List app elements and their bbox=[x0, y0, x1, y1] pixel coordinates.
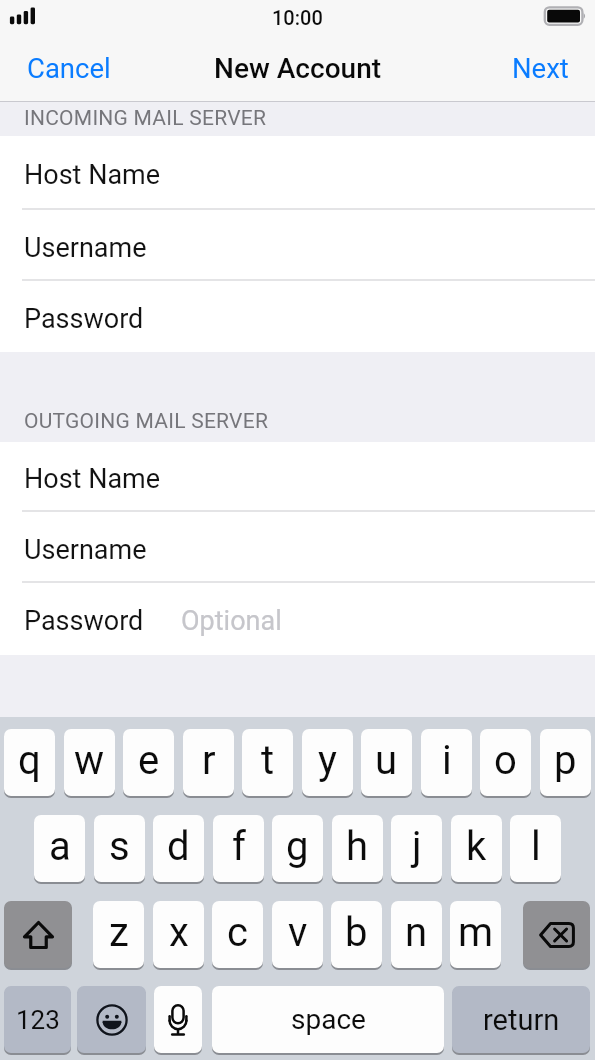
staticText: x bbox=[169, 909, 189, 956]
button[interactable]: Dictation bbox=[154, 986, 202, 1055]
staticText: v bbox=[288, 909, 308, 956]
button[interactable]: v bbox=[272, 901, 323, 970]
staticText: u bbox=[375, 737, 398, 784]
staticText: k bbox=[466, 823, 487, 870]
button[interactable]: d bbox=[153, 815, 204, 884]
staticText: o bbox=[494, 737, 517, 784]
button[interactable]: n bbox=[391, 901, 442, 970]
button[interactable]: space bbox=[212, 986, 444, 1055]
staticText: e bbox=[138, 737, 160, 784]
staticText: 10:00 bbox=[272, 6, 323, 29]
button[interactable]: c bbox=[212, 901, 263, 970]
staticText: Username bbox=[24, 232, 147, 264]
staticText: Host Name bbox=[24, 463, 161, 495]
button[interactable]: s bbox=[94, 815, 145, 884]
button[interactable]: i bbox=[421, 729, 472, 798]
button[interactable]: Backspace bbox=[523, 901, 590, 970]
staticText: space bbox=[291, 1003, 366, 1036]
staticText: OUTGOING MAIL SERVER bbox=[24, 409, 269, 434]
staticText: l bbox=[531, 823, 541, 870]
staticText: return bbox=[483, 1003, 560, 1037]
staticText: p bbox=[554, 737, 577, 784]
staticText: Cancel bbox=[27, 52, 111, 84]
staticText: Password bbox=[24, 605, 144, 637]
button[interactable]: Next bbox=[492, 43, 595, 99]
staticText: z bbox=[109, 909, 129, 956]
staticText: w bbox=[74, 737, 105, 784]
button[interactable]: w bbox=[64, 729, 115, 798]
button[interactable]: Shift bbox=[4, 901, 72, 970]
button[interactable]: o bbox=[480, 729, 531, 798]
staticText: a bbox=[49, 823, 71, 870]
button[interactable]: Password bbox=[0, 281, 595, 352]
button[interactable]: l bbox=[510, 815, 561, 884]
staticText: h bbox=[346, 823, 369, 870]
button[interactable]: h bbox=[332, 815, 383, 884]
button[interactable]: b bbox=[331, 901, 382, 970]
staticText: s bbox=[109, 823, 130, 870]
button[interactable]: Host Name bbox=[0, 442, 595, 512]
button[interactable]: z bbox=[93, 901, 144, 970]
button[interactable]: Emoji keyboard bbox=[77, 986, 146, 1055]
button[interactable]: q bbox=[4, 729, 55, 798]
staticText: Password bbox=[24, 303, 144, 335]
staticText: t bbox=[261, 737, 275, 784]
staticText: New Account bbox=[214, 52, 382, 85]
button[interactable]: Host Name bbox=[0, 136, 595, 210]
button[interactable]: Cancel bbox=[0, 43, 131, 99]
button[interactable]: f bbox=[213, 815, 264, 884]
staticText: g bbox=[286, 823, 309, 870]
button[interactable]: 123 bbox=[4, 986, 71, 1055]
staticText: y bbox=[318, 737, 337, 784]
staticText: i bbox=[442, 737, 452, 784]
button[interactable]: x bbox=[153, 901, 204, 970]
staticText: Username bbox=[24, 534, 147, 566]
button[interactable]: p bbox=[540, 729, 591, 798]
button[interactable]: Username bbox=[0, 210, 595, 281]
button[interactable]: g bbox=[272, 815, 323, 884]
staticText: Next bbox=[512, 52, 569, 84]
staticText: r bbox=[202, 737, 216, 784]
button[interactable]: k bbox=[451, 815, 502, 884]
button[interactable]: Username bbox=[0, 512, 595, 583]
button[interactable]: m bbox=[450, 901, 501, 970]
staticText: Optional bbox=[181, 605, 282, 637]
staticText: d bbox=[167, 823, 190, 870]
button[interactable]: return bbox=[452, 986, 590, 1055]
button[interactable]: r bbox=[183, 729, 234, 798]
button[interactable]: e bbox=[123, 729, 174, 798]
staticText: j bbox=[412, 823, 422, 870]
staticText: c bbox=[227, 909, 248, 956]
staticText: m bbox=[458, 909, 494, 956]
button[interactable]: a bbox=[34, 815, 85, 884]
staticText: 123 bbox=[16, 1005, 60, 1035]
staticText: f bbox=[232, 823, 246, 870]
button[interactable]: t bbox=[242, 729, 293, 798]
button[interactable]: j bbox=[391, 815, 442, 884]
button[interactable]: y bbox=[302, 729, 353, 798]
staticText: b bbox=[345, 909, 368, 956]
button[interactable]: Password bbox=[0, 583, 595, 655]
staticText: n bbox=[405, 909, 428, 956]
staticText: INCOMING MAIL SERVER bbox=[24, 106, 267, 131]
staticText: Host Name bbox=[24, 159, 161, 191]
staticText: q bbox=[18, 737, 41, 784]
button[interactable]: u bbox=[361, 729, 412, 798]
